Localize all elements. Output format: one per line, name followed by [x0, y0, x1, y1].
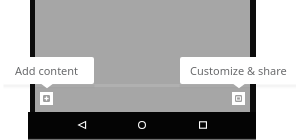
staticText: Add content: [15, 63, 79, 78]
button[interactable]: Back: [72, 115, 92, 135]
button[interactable]: Customize and share: [232, 92, 245, 105]
button[interactable]: Add content: [4, 57, 94, 84]
button[interactable]: Home: [132, 115, 152, 135]
staticText: Customize & share: [190, 63, 287, 78]
button[interactable]: Recent apps: [193, 115, 213, 135]
button[interactable]: Customize & share: [180, 57, 296, 84]
button[interactable]: Add content: [40, 92, 53, 105]
